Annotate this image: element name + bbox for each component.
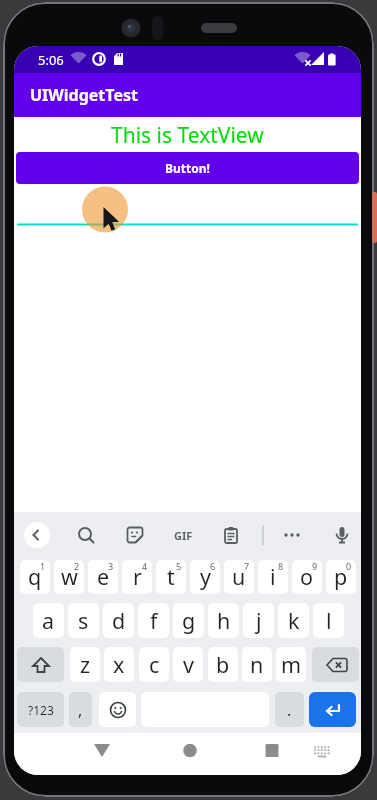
staticText: . [287,699,292,721]
staticText: 9 [312,560,318,572]
staticText: r [133,562,142,591]
staticText: UIWidgetTest [30,84,138,106]
staticText: z [80,650,91,679]
button[interactable] [17,189,358,226]
staticText: 6 [210,560,216,572]
button[interactable]: GIF [170,522,196,548]
staticText: 3 [108,560,114,572]
staticText: Button! [165,160,210,176]
staticText: 4 [142,560,148,572]
staticText: d [112,606,126,635]
button[interactable] [54,560,84,594]
staticText: y [200,562,211,591]
button[interactable] [224,560,254,594]
button[interactable] [326,560,356,594]
staticText: k [288,606,300,635]
button[interactable]: v [173,647,203,682]
button[interactable]: j [243,603,274,638]
button[interactable]: n [242,647,272,682]
staticText: 1 [40,560,46,572]
staticText: l [326,606,332,635]
button[interactable] [73,522,99,548]
button[interactable]: a [33,603,64,638]
staticText: g [182,606,196,635]
button[interactable] [259,738,285,764]
button[interactable] [88,560,118,594]
button[interactable]: h [208,603,239,638]
staticText: GIF [174,528,193,543]
button[interactable] [24,522,50,548]
staticText: v [183,650,194,679]
button[interactable]: g [173,603,204,638]
button[interactable]: , [69,692,92,727]
staticText: 5 [176,560,182,572]
staticText: e [97,562,110,591]
button[interactable]: s [68,603,99,638]
button[interactable] [292,560,322,594]
button[interactable] [156,560,186,594]
staticText: n [250,650,264,679]
staticText: u [232,562,246,591]
staticText: f [150,606,158,635]
staticText: , [78,699,83,721]
button[interactable]: k [278,603,309,638]
button[interactable]: c [139,647,169,682]
staticText: q [28,562,42,591]
button[interactable]: Button! [16,152,359,184]
button[interactable]: x [104,647,134,682]
staticText: a [42,606,55,635]
staticText: j [256,606,262,635]
staticText: 8 [278,560,284,572]
button[interactable] [258,560,288,594]
staticText: 7 [244,560,250,572]
button[interactable]: . [275,692,304,727]
button[interactable]: d [103,603,134,638]
staticText: o [300,562,314,591]
staticText: 2 [74,560,80,572]
button[interactable] [309,692,356,727]
button[interactable] [279,522,305,548]
button[interactable] [177,738,203,764]
button[interactable] [309,738,335,764]
button[interactable]: m [276,647,306,682]
button[interactable]: f [138,603,169,638]
button[interactable] [99,692,136,727]
staticText: w [61,562,78,591]
staticText: b [216,650,230,679]
staticText: c [149,650,160,679]
staticText: m [281,650,302,679]
staticText: h [217,606,231,635]
staticText: x [113,650,125,679]
button[interactable]: b [208,647,238,682]
button[interactable]: z [70,647,100,682]
staticText: p [334,562,348,591]
staticText: t [167,562,175,591]
button[interactable] [312,647,359,682]
staticText: 5:06 [38,51,64,69]
button[interactable] [218,522,244,548]
button[interactable] [20,560,50,594]
button[interactable] [17,647,64,682]
button[interactable]: ?123 [17,692,64,727]
staticText: s [78,606,89,635]
staticText: This is TextView [111,121,264,150]
staticText: 0 [346,560,352,572]
staticText: ?123 [28,702,54,718]
button[interactable] [329,522,355,548]
button[interactable] [190,560,220,594]
staticText: i [270,562,276,591]
button[interactable] [122,522,148,548]
button[interactable] [89,738,115,764]
button[interactable]: l [313,603,344,638]
button[interactable] [122,560,152,594]
